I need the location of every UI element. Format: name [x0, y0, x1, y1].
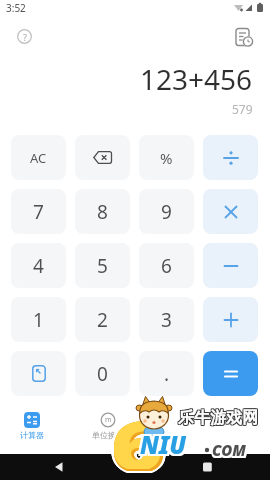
- staticText: NIU: [142, 428, 189, 461]
- staticText: COM: [211, 442, 245, 462]
- staticText: NIU: [140, 426, 187, 459]
- button[interactable]: 1: [11, 297, 66, 342]
- staticText: 6: [110, 400, 162, 472]
- button[interactable]: 2: [75, 297, 130, 342]
- staticText: NIU: [140, 428, 187, 461]
- button[interactable]: 计算器: [8, 408, 56, 448]
- staticText: 6: [111, 398, 163, 470]
- button[interactable]: 0: [75, 351, 130, 396]
- staticText: NIU: [142, 426, 189, 459]
- staticText: 9: [161, 199, 172, 225]
- button[interactable]: 6: [139, 243, 194, 288]
- staticText: 6: [114, 395, 166, 467]
- button[interactable]: m: [84, 408, 132, 448]
- button[interactable]: 4: [11, 243, 66, 288]
- staticText: 6: [110, 397, 162, 469]
- staticText: 乐牛游戏网: [178, 408, 258, 428]
- staticText: 单位换算: [92, 430, 124, 440]
- button[interactable]: ?: [14, 26, 35, 47]
- button[interactable]: .: [139, 351, 194, 396]
- staticText: 乐牛游戏网: [177, 409, 257, 429]
- staticText: 乐牛游戏网: [179, 407, 259, 427]
- staticText: 6: [108, 399, 160, 471]
- button[interactable]: [203, 243, 258, 288]
- staticText: COM: [211, 439, 245, 459]
- staticText: 6: [114, 400, 166, 472]
- staticText: 6: [116, 398, 168, 470]
- staticText: %: [160, 148, 173, 168]
- staticText: COM: [214, 442, 248, 462]
- staticText: .: [164, 361, 170, 387]
- button[interactable]: 8: [75, 189, 130, 234]
- staticText: 5: [97, 253, 108, 279]
- staticText: 6: [114, 396, 166, 468]
- staticText: 6: [112, 396, 164, 468]
- button[interactable]: [203, 351, 258, 396]
- staticText: 6: [112, 399, 164, 471]
- button[interactable]: AC: [11, 135, 66, 180]
- staticText: AC: [30, 149, 47, 167]
- staticText: 6: [108, 398, 160, 470]
- button[interactable]: [203, 297, 258, 342]
- staticText: 6: [161, 253, 172, 279]
- staticText: m: [105, 415, 112, 425]
- staticText: 6: [115, 397, 167, 469]
- staticText: 6: [111, 400, 163, 472]
- button[interactable]: [233, 27, 255, 49]
- staticText: 乐牛游戏网: [177, 408, 257, 428]
- staticText: 8: [97, 199, 108, 225]
- staticText: 6: [111, 399, 163, 471]
- staticText: COM: [212, 439, 246, 459]
- button[interactable]: [203, 189, 258, 234]
- button[interactable]: [11, 351, 66, 396]
- staticText: 6: [110, 396, 162, 468]
- staticText: 579: [232, 101, 253, 117]
- staticText: 4: [33, 253, 44, 279]
- staticText: COM: [214, 439, 248, 459]
- button[interactable]: 5: [75, 243, 130, 288]
- staticText: 6: [114, 397, 166, 469]
- staticText: COM: [211, 440, 245, 460]
- staticText: ?: [23, 31, 27, 43]
- staticText: 乐牛游戏网: [178, 409, 258, 429]
- staticText: 6: [111, 396, 163, 468]
- staticText: 乐牛游戏网: [177, 407, 257, 427]
- staticText: NIU: [138, 430, 185, 463]
- button[interactable]: 9: [139, 189, 194, 234]
- staticText: 6: [116, 399, 168, 471]
- staticText: COM: [214, 440, 248, 460]
- staticText: 6: [111, 397, 163, 469]
- staticText: 3:52: [6, 1, 26, 15]
- staticText: 6: [112, 401, 164, 473]
- staticText: 2: [97, 307, 108, 333]
- staticText: 123+456: [140, 60, 253, 98]
- staticText: 6: [110, 399, 162, 471]
- staticText: 3: [161, 307, 172, 333]
- staticText: 6: [115, 398, 167, 470]
- staticText: COM: [212, 442, 246, 462]
- staticText: 1: [33, 307, 44, 333]
- button[interactable]: [75, 135, 130, 180]
- staticText: 6: [115, 396, 167, 468]
- staticText: NIU: [142, 430, 189, 463]
- staticText: 6: [115, 400, 167, 472]
- staticText: 6: [111, 401, 163, 473]
- staticText: 6: [112, 400, 164, 472]
- button[interactable]: [203, 135, 258, 180]
- staticText: 6: [116, 397, 168, 469]
- staticText: NIU: [140, 430, 187, 463]
- staticText: 乐牛游戏网: [179, 408, 259, 428]
- staticText: COM: [212, 440, 246, 460]
- staticText: 6: [114, 399, 166, 471]
- button[interactable]: %: [139, 135, 194, 180]
- staticText: 6: [111, 397, 163, 469]
- staticText: 7: [33, 199, 44, 225]
- staticText: 0: [97, 361, 108, 387]
- staticText: 6: [112, 397, 164, 469]
- staticText: 6: [114, 401, 166, 473]
- button[interactable]: 3: [139, 297, 194, 342]
- button[interactable]: 7: [11, 189, 66, 234]
- staticText: 6: [112, 395, 164, 467]
- staticText: NIU: [138, 428, 185, 461]
- staticText: 6: [112, 398, 164, 470]
